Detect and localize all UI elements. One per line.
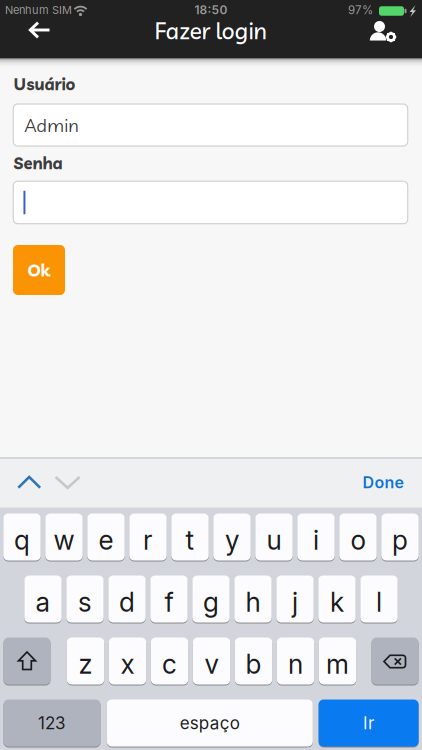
button[interactable]: g xyxy=(192,575,230,622)
staticText: 123 xyxy=(38,713,66,733)
staticText: f xyxy=(164,586,173,618)
button[interactable]: p xyxy=(381,513,419,560)
staticText: v xyxy=(205,648,219,680)
staticText: w xyxy=(53,524,74,556)
button[interactable]: j xyxy=(276,575,314,622)
button[interactable]: Manage account xyxy=(362,10,406,54)
button[interactable]: espaço xyxy=(107,699,313,746)
staticText: 97% xyxy=(348,3,373,17)
button[interactable]: i xyxy=(297,513,335,560)
staticText: r xyxy=(143,524,153,556)
button[interactable]: h xyxy=(234,575,272,622)
staticText: p xyxy=(392,524,408,556)
button[interactable]: w xyxy=(45,513,83,560)
staticText: k xyxy=(330,586,344,618)
button[interactable]: k xyxy=(318,575,356,622)
staticText: Ok xyxy=(27,259,50,281)
staticText: Done xyxy=(362,473,403,492)
staticText: o xyxy=(350,524,365,556)
staticText: Fazer login xyxy=(154,16,266,45)
button[interactable]: a xyxy=(24,575,62,622)
button[interactable]: Done xyxy=(339,464,403,500)
staticText: Senha xyxy=(13,153,62,173)
button[interactable]: m xyxy=(319,637,356,684)
staticText: i xyxy=(313,524,319,556)
button[interactable]: Back xyxy=(16,8,60,52)
button[interactable]: x xyxy=(109,637,146,684)
button[interactable]: Next field xyxy=(46,460,90,504)
staticText: n xyxy=(288,648,303,680)
staticText: s xyxy=(78,586,92,618)
button[interactable]: 123 xyxy=(3,699,100,746)
staticText: x xyxy=(120,648,134,680)
staticText: b xyxy=(246,648,262,680)
staticText: Usuário xyxy=(13,74,75,94)
button[interactable]: Delete xyxy=(371,637,418,684)
staticText: g xyxy=(203,586,219,618)
staticText: l xyxy=(376,586,382,618)
button[interactable]: e xyxy=(87,513,125,560)
staticText: Admin xyxy=(24,113,79,137)
button[interactable]: r xyxy=(129,513,167,560)
staticText: d xyxy=(119,586,135,618)
button[interactable]: d xyxy=(108,575,146,622)
staticText: e xyxy=(98,524,113,556)
staticText: z xyxy=(78,648,92,680)
button[interactable]: Ok xyxy=(13,245,65,295)
button[interactable]: n xyxy=(277,637,314,684)
button[interactable]: o xyxy=(339,513,377,560)
staticText: t xyxy=(185,524,194,556)
staticText: h xyxy=(245,586,260,618)
staticText: espaço xyxy=(180,713,240,733)
button[interactable]: v xyxy=(193,637,230,684)
button[interactable]: Senha xyxy=(13,181,408,224)
staticText: c xyxy=(162,648,177,680)
staticText: m xyxy=(326,648,349,680)
button[interactable]: l xyxy=(360,575,398,622)
button[interactable]: y xyxy=(213,513,251,560)
staticText: y xyxy=(225,524,239,556)
button[interactable]: Ir xyxy=(319,699,419,746)
staticText: j xyxy=(292,586,298,618)
button[interactable]: u xyxy=(255,513,293,560)
staticText: u xyxy=(266,524,281,556)
staticText: Nenhum SIM xyxy=(5,3,72,17)
staticText: a xyxy=(35,586,50,618)
button[interactable]: f xyxy=(150,575,188,622)
button[interactable]: q xyxy=(3,513,41,560)
staticText: Ir xyxy=(363,713,374,733)
button[interactable]: Shift xyxy=(3,637,50,684)
staticText: q xyxy=(14,524,30,556)
button[interactable]: t xyxy=(171,513,209,560)
staticText: 18:50 xyxy=(194,3,227,17)
button[interactable]: z xyxy=(67,637,104,684)
button[interactable]: b xyxy=(235,637,272,684)
button[interactable]: s xyxy=(66,575,104,622)
button[interactable]: Previous field xyxy=(7,460,51,504)
button[interactable]: Usuário xyxy=(13,104,408,146)
button[interactable]: c xyxy=(151,637,188,684)
